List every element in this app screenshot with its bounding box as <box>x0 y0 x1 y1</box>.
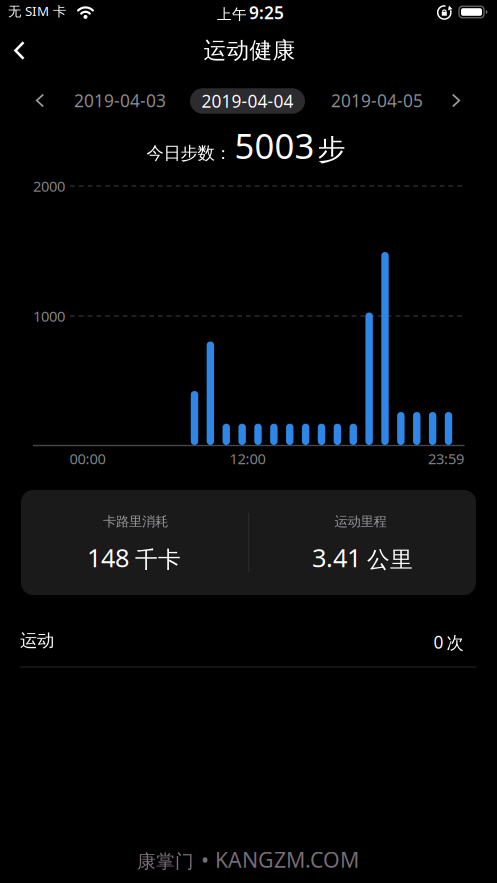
staticText: 148 <box>87 541 129 574</box>
staticText: 步 <box>317 132 345 167</box>
staticText: 5003 <box>234 122 314 168</box>
button[interactable]: 2019-04-05 <box>331 89 423 112</box>
staticText: 上午 <box>217 5 247 23</box>
staticText: 00:00 <box>69 449 105 468</box>
staticText: • KANGZM.COM <box>201 845 359 874</box>
button[interactable] <box>27 84 53 116</box>
staticText: 卡 <box>53 3 66 20</box>
button[interactable] <box>443 84 469 116</box>
staticText: 千卡 <box>135 546 181 574</box>
staticText: 公里 <box>367 546 413 574</box>
staticText: 2019-04-04 <box>201 89 293 112</box>
staticText: 康掌门 <box>137 850 194 873</box>
staticText: 9:25 <box>249 1 284 24</box>
staticText: 3.41 <box>312 541 361 574</box>
staticText: 1000 <box>33 306 65 326</box>
staticText: 2000 <box>33 176 65 196</box>
staticText: 卡路里消耗 <box>103 513 168 530</box>
staticText: 运动健康 <box>203 37 295 64</box>
staticText: 运动 <box>20 630 54 651</box>
staticText: 运动里程 <box>334 513 386 530</box>
staticText: 2019-04-03 <box>74 89 166 112</box>
staticText: 0 <box>433 630 443 653</box>
button[interactable]: 2019-04-04 <box>190 88 305 114</box>
staticText: 次 <box>446 632 463 654</box>
staticText: 2019-04-05 <box>331 89 423 112</box>
button[interactable]: 2019-04-03 <box>74 89 166 112</box>
staticText: 23:59 <box>428 449 464 468</box>
staticText: 今日步数： <box>146 142 231 164</box>
button[interactable]: 运动 <box>0 615 497 668</box>
button[interactable] <box>3 30 35 71</box>
staticText: SIM <box>25 2 49 20</box>
staticText: 无 <box>8 3 21 20</box>
staticText: 12:00 <box>229 449 265 468</box>
